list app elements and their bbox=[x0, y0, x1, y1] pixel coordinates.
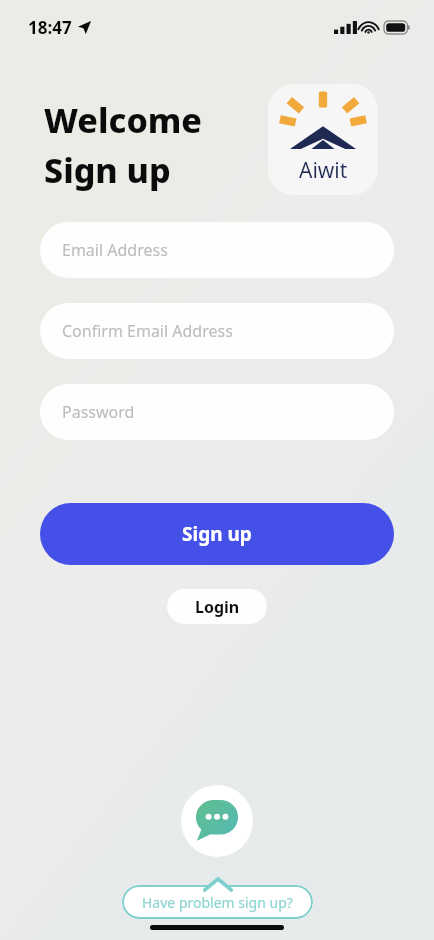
button[interactable]: Password bbox=[40, 384, 394, 440]
staticText: Confirm Email Address bbox=[62, 320, 233, 342]
staticText: Password bbox=[62, 401, 135, 423]
staticText: Welcome bbox=[44, 97, 202, 143]
button[interactable]: Sign up bbox=[40, 503, 394, 565]
staticText: Sign up bbox=[182, 521, 252, 547]
staticText: 18:47 bbox=[28, 16, 72, 39]
button[interactable]: Email Address bbox=[40, 222, 394, 278]
button[interactable]: Login bbox=[167, 589, 267, 624]
staticText: Sign up bbox=[44, 147, 171, 193]
staticText: Email Address bbox=[62, 239, 168, 261]
button[interactable]: Open support chat bbox=[181, 785, 253, 857]
staticText: Have problem sign up? bbox=[142, 893, 293, 912]
button[interactable]: Aiwit bbox=[268, 84, 378, 195]
staticText: Aiwit bbox=[299, 156, 348, 185]
button[interactable]: Have problem sign up? bbox=[122, 885, 313, 919]
staticText: Login bbox=[195, 596, 240, 618]
button[interactable]: Confirm Email Address bbox=[40, 303, 394, 359]
